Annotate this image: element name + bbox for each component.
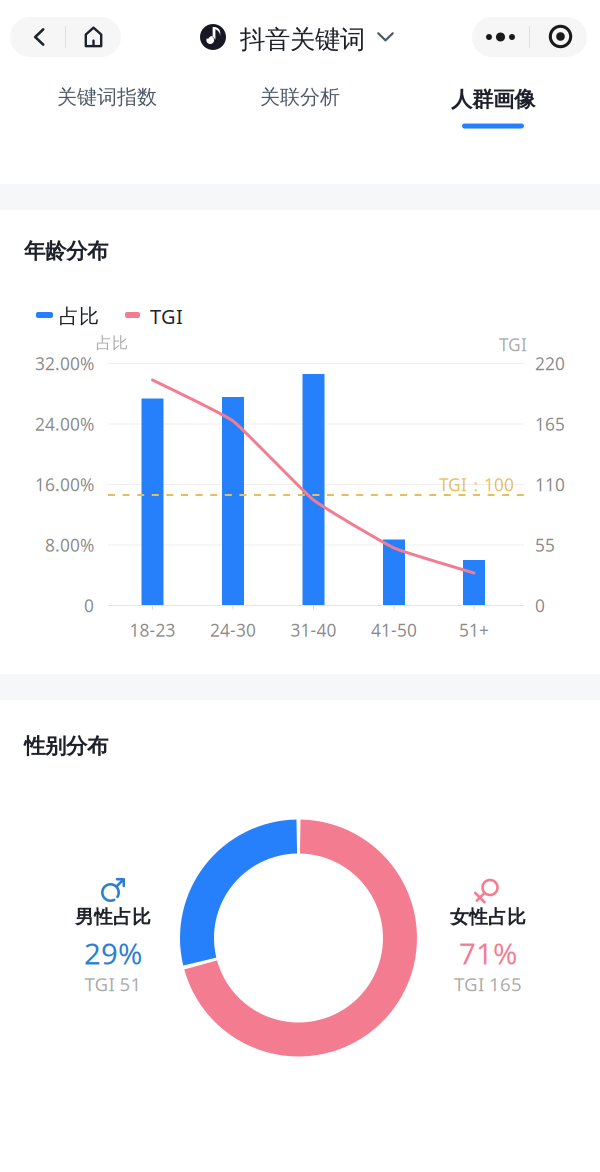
- staticText: TGI：100: [439, 473, 514, 496]
- staticText: 男性占比: [75, 905, 151, 928]
- staticText: 占比: [96, 333, 128, 353]
- staticText: 抖音关键词: [240, 24, 365, 55]
- staticText: 165: [535, 412, 565, 435]
- staticText: 24-30: [210, 618, 256, 641]
- staticText: 关键词指数: [57, 85, 157, 109]
- staticText: 55: [535, 533, 555, 556]
- button[interactable]: Back and Home: [0, 0, 600, 1172]
- staticText: TGI 51: [84, 972, 141, 996]
- staticText: 关联分析: [260, 85, 340, 109]
- staticText: 0: [535, 594, 545, 617]
- staticText: 29%: [84, 933, 142, 972]
- staticText: 110: [535, 473, 565, 496]
- staticText: 0: [84, 594, 94, 617]
- staticText: 8.00%: [45, 533, 94, 556]
- button[interactable]: Close: [530, 17, 587, 57]
- staticText: TGI 165: [454, 972, 522, 996]
- button[interactable]: 关键词指数: [12, 73, 202, 121]
- staticText: 24.00%: [35, 412, 94, 435]
- staticText: 41-50: [371, 618, 417, 641]
- staticText: 18-23: [129, 618, 175, 641]
- staticText: 16.00%: [35, 473, 94, 496]
- staticText: 年龄分布: [24, 238, 108, 264]
- staticText: 71%: [459, 933, 517, 972]
- button[interactable]: More options: [472, 17, 529, 57]
- button[interactable]: 人群画像: [398, 73, 588, 131]
- staticText: TGI: [499, 333, 527, 356]
- staticText: 32.00%: [35, 352, 94, 375]
- staticText: 人群画像: [451, 86, 535, 113]
- staticText: 220: [535, 352, 565, 375]
- button[interactable]: 关联分析: [205, 73, 395, 121]
- staticText: TGI: [150, 303, 183, 330]
- staticText: 51+: [459, 618, 489, 641]
- staticText: 占比: [59, 304, 99, 329]
- staticText: 女性占比: [450, 905, 526, 928]
- staticText: 性别分布: [24, 733, 108, 759]
- staticText: 31-40: [290, 618, 336, 641]
